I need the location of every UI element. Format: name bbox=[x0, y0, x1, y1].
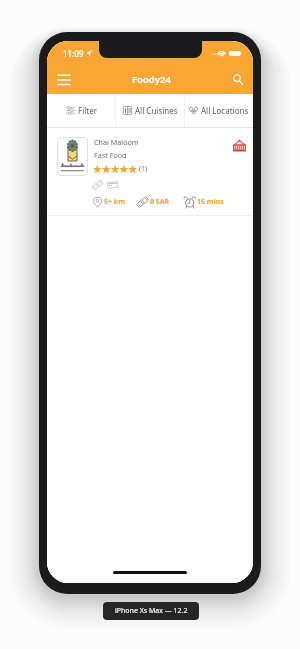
staticText: iPhone Xs Max — 12.2 bbox=[115, 606, 188, 616]
button[interactable]: Menu bbox=[50, 65, 78, 94]
staticText: Foody24 bbox=[132, 73, 171, 86]
button[interactable]: Search bbox=[227, 65, 249, 94]
staticText: (1) bbox=[139, 164, 148, 174]
staticText: All Locations bbox=[201, 105, 249, 116]
staticText: 0 SAR bbox=[150, 197, 170, 207]
staticText: 5+ km bbox=[104, 197, 125, 207]
button[interactable]: Chai Maloom bbox=[47, 128, 253, 167]
staticText: 11:09 bbox=[63, 48, 84, 59]
button[interactable]: All Locations bbox=[185, 94, 253, 127]
staticText: Fast Food bbox=[94, 150, 127, 160]
button[interactable]: All Cuisines bbox=[116, 94, 184, 127]
staticText: All Cuisines bbox=[135, 105, 178, 116]
staticText: Filter bbox=[78, 105, 97, 116]
button[interactable]: Filter bbox=[47, 94, 115, 127]
staticText: 15 mins bbox=[197, 197, 224, 207]
staticText: Chai Maloom bbox=[94, 137, 139, 147]
